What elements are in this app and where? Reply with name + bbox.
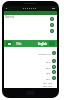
- button[interactable]: Status: [4, 22, 57, 28]
- other: Status: [52, 76, 56, 80]
- staticText: Title: [16, 42, 22, 45]
- staticText: Normal: [5, 15, 15, 19]
- other: Status: [52, 70, 56, 74]
- staticText: text row: [43, 81, 53, 84]
- button[interactable]: Status: [4, 28, 57, 34]
- staticText: text row: [43, 84, 53, 87]
- other: Status: [50, 29, 54, 33]
- other: Status: [52, 51, 56, 55]
- other: Status: [52, 65, 56, 69]
- button[interactable]: Menu: [4, 40, 57, 47]
- staticText: text: [46, 60, 51, 63]
- other: Menu: [6, 41, 12, 46]
- button[interactable]: header text: [4, 50, 57, 56]
- button[interactable]: text row: [4, 83, 57, 87]
- staticText: text: [46, 77, 51, 80]
- button[interactable]: text: [4, 75, 57, 81]
- other: Status: [50, 17, 54, 21]
- button[interactable]: text: [4, 64, 57, 70]
- staticText: text: [46, 66, 51, 69]
- button[interactable]: text: [4, 58, 57, 64]
- other: Status: [52, 59, 56, 63]
- button[interactable]: text row: [4, 80, 57, 84]
- staticText: English: [38, 42, 47, 45]
- staticText: header text: [38, 52, 51, 55]
- staticText: text: [46, 71, 51, 74]
- other: Status: [50, 23, 54, 27]
- button[interactable]: Status: [4, 16, 57, 22]
- button[interactable]: text: [4, 69, 57, 75]
